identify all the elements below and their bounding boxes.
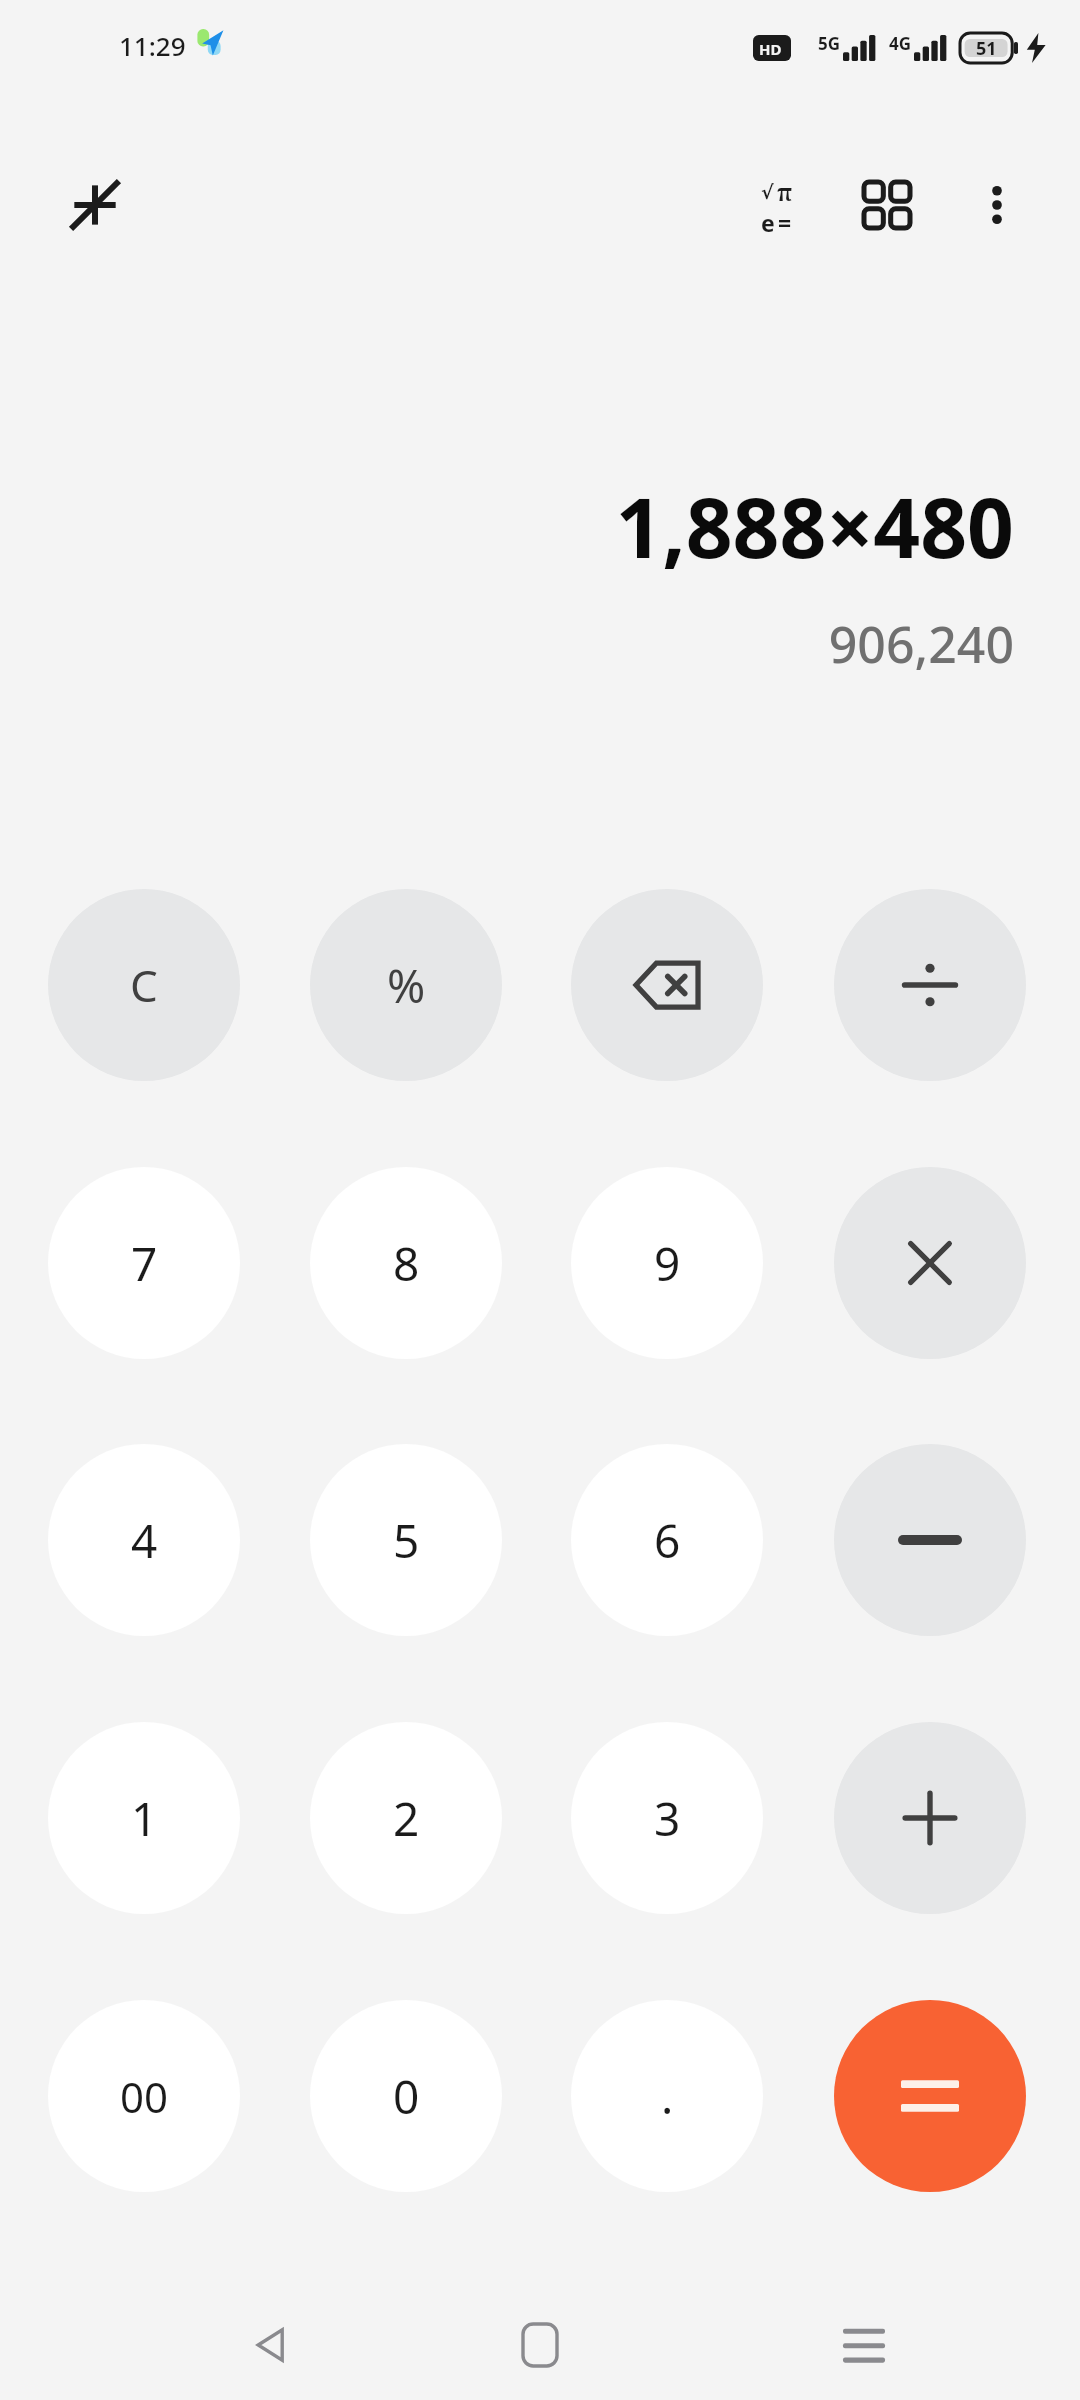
button[interactable]: Collapse	[40, 150, 150, 260]
staticText: HD	[759, 39, 782, 59]
staticText: 51	[976, 36, 997, 61]
staticText: 906,240	[828, 610, 1014, 678]
staticText: .	[661, 2065, 674, 2128]
button[interactable]: Backspace	[571, 889, 763, 1081]
staticText: 4	[131, 1509, 158, 1572]
button[interactable]: Multiply	[834, 1167, 1026, 1359]
staticText: √	[761, 181, 774, 203]
staticText: 5	[393, 1509, 420, 1572]
button[interactable]: Divide	[834, 889, 1026, 1081]
staticText: 7	[131, 1232, 158, 1295]
staticText: 2	[393, 1787, 420, 1850]
staticText: C	[130, 955, 158, 1015]
button[interactable]: .	[571, 2000, 763, 2192]
button[interactable]: 3	[571, 1722, 763, 1914]
staticText: 0	[393, 2065, 420, 2128]
button[interactable]: 7	[48, 1167, 240, 1359]
button[interactable]: Minus	[834, 1444, 1026, 1636]
button[interactable]: Scientific	[722, 150, 832, 260]
button[interactable]: %	[310, 889, 502, 1081]
staticText: 5G	[818, 32, 841, 55]
staticText: π	[777, 176, 793, 207]
button[interactable]: Plus	[834, 1722, 1026, 1914]
button[interactable]: 6	[571, 1444, 763, 1636]
staticText: %	[387, 954, 426, 1017]
staticText: 6	[654, 1509, 681, 1572]
button[interactable]: Home	[485, 2290, 595, 2400]
button[interactable]: 00	[48, 2000, 240, 2192]
staticText: 11:29	[119, 28, 186, 63]
button[interactable]: More options	[942, 150, 1052, 260]
button[interactable]: 8	[310, 1167, 502, 1359]
button[interactable]: 1	[48, 1722, 240, 1914]
button[interactable]: 5	[310, 1444, 502, 1636]
staticText: =	[778, 207, 792, 234]
staticText: 1,888×480	[615, 470, 1014, 582]
staticText: 1	[131, 1787, 158, 1850]
button[interactable]: Back	[216, 2290, 326, 2400]
staticText: 00	[120, 2068, 169, 2125]
button[interactable]: Recent apps	[809, 2290, 919, 2400]
button[interactable]: 9	[571, 1167, 763, 1359]
button[interactable]: 2	[310, 1722, 502, 1914]
staticText: 4G	[889, 32, 912, 55]
staticText: 3	[654, 1787, 681, 1850]
staticText: 8	[393, 1232, 420, 1295]
button[interactable]: Converter	[832, 150, 942, 260]
staticText: 9	[654, 1232, 681, 1295]
button[interactable]: 0	[310, 2000, 502, 2192]
button[interactable]: 4	[48, 1444, 240, 1636]
button[interactable]: Equals	[834, 2000, 1026, 2192]
staticText: e	[761, 207, 775, 234]
button[interactable]: C	[48, 889, 240, 1081]
